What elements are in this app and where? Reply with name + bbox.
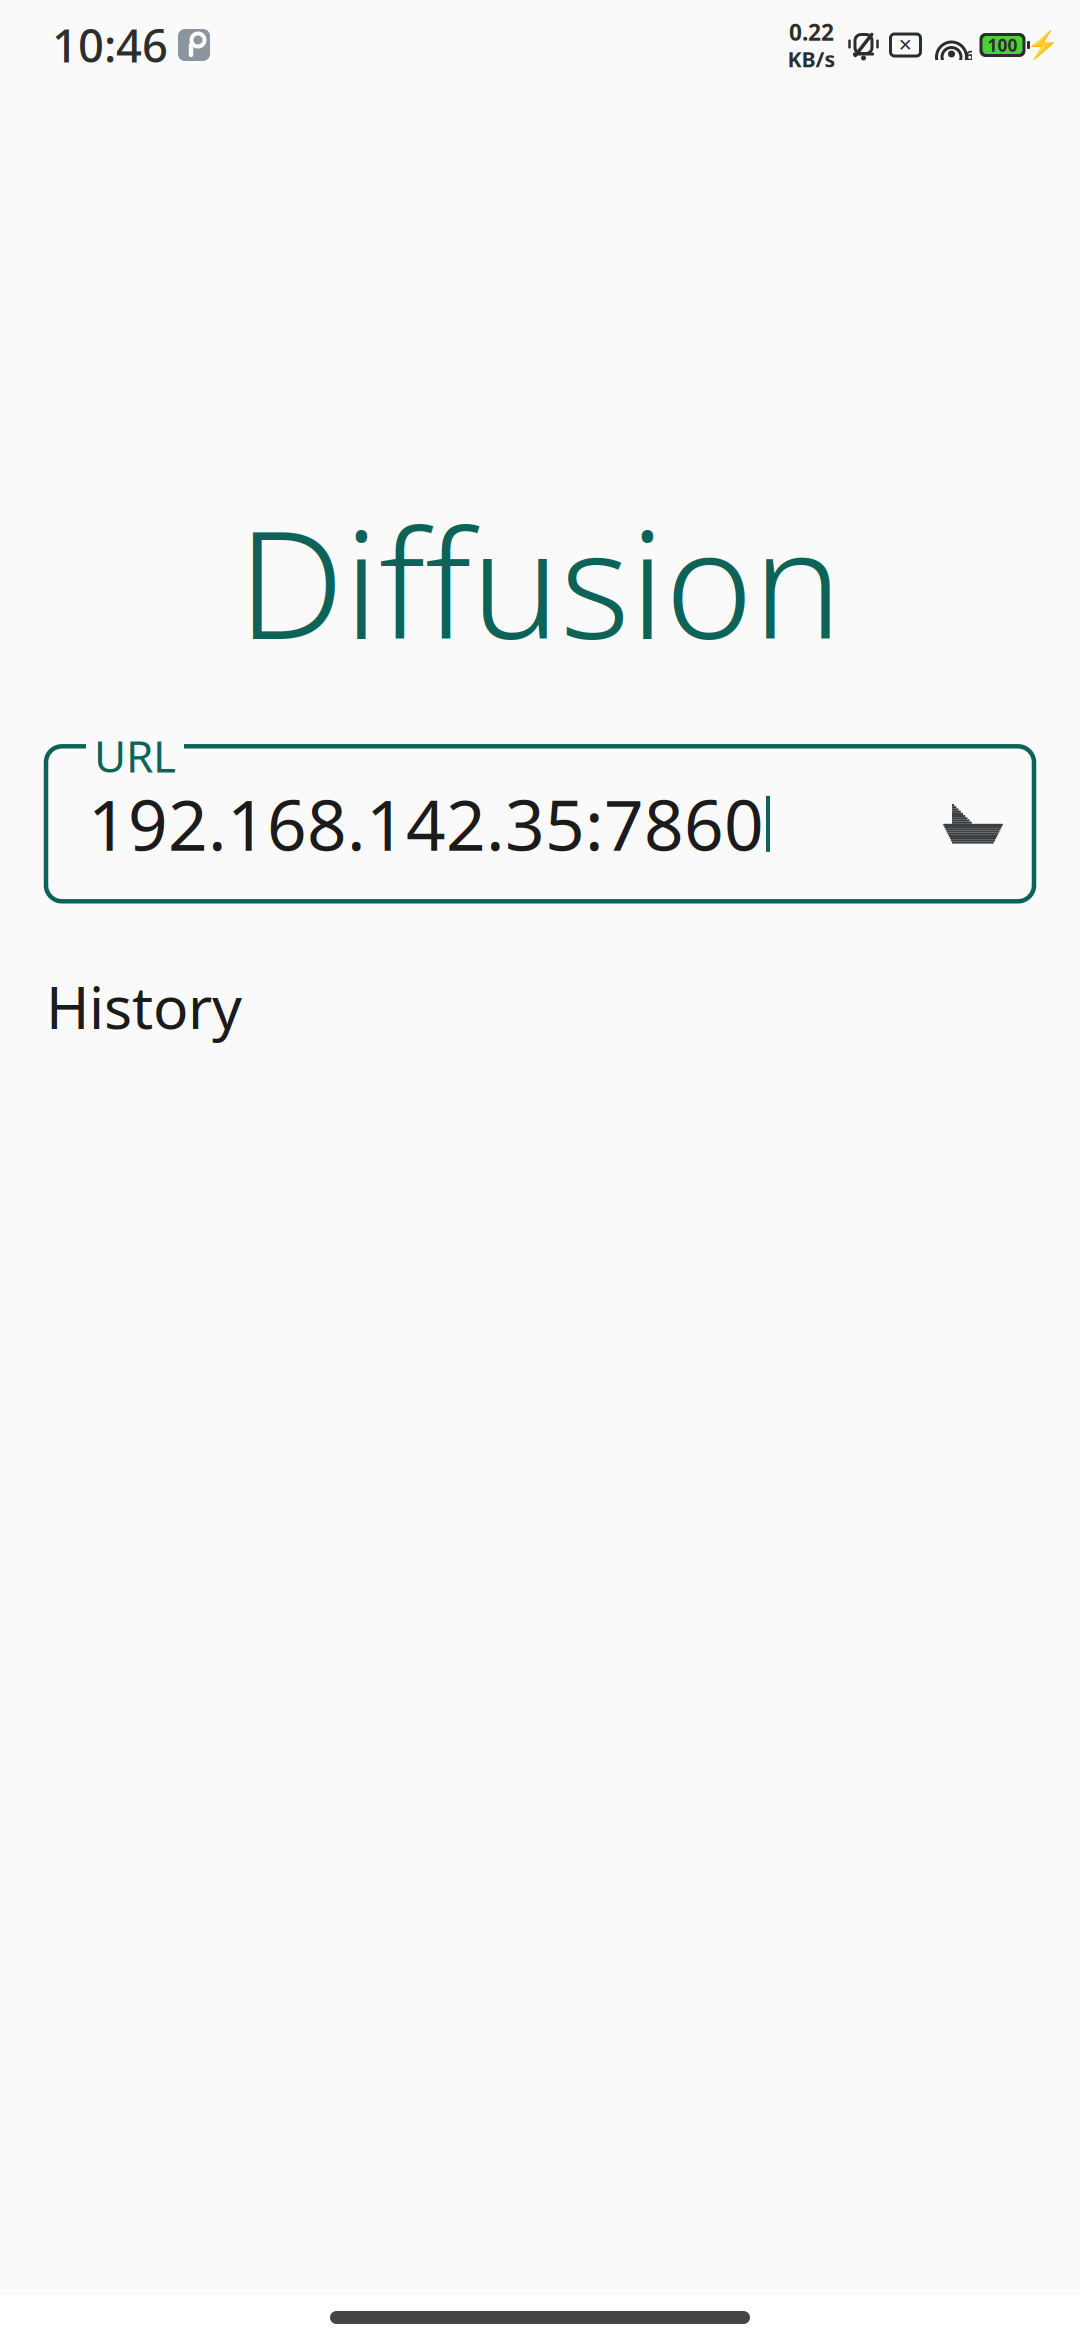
staticText: 192.168.142.35:7860 [88,778,764,870]
staticText: ✕ [898,35,913,55]
staticText: 0.22 [789,17,834,47]
button[interactable]: Connect [938,779,1008,869]
staticText: 10:46 [52,15,168,75]
staticText: 6 [965,45,973,65]
staticText: KB/s [787,45,835,73]
staticText: URL [94,726,176,785]
staticText: 100 [987,33,1017,56]
staticText: History [46,967,242,1045]
staticText: ⚡ [1025,30,1058,60]
staticText: Diffusion [238,482,842,680]
